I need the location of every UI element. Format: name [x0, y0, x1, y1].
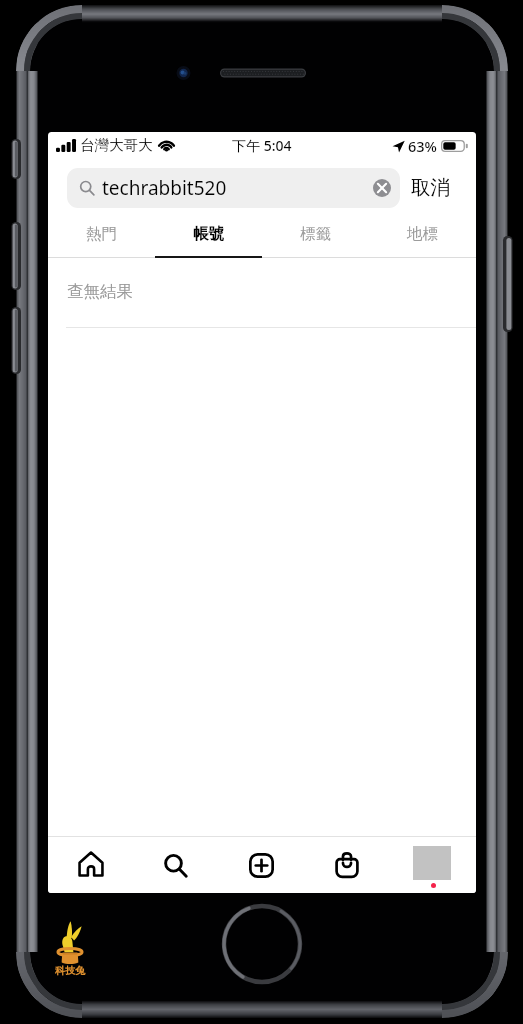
- staticText: 科技兔: [55, 964, 85, 977]
- staticText: techrabbit520: [102, 175, 227, 201]
- button[interactable]: New post: [218, 837, 304, 893]
- button[interactable]: 取消: [400, 162, 461, 213]
- staticText: 標籤: [300, 224, 331, 244]
- button[interactable]: Clear search: [373, 179, 391, 197]
- button[interactable]: 帳號: [155, 213, 262, 258]
- staticText: 下午 5:04: [232, 136, 292, 155]
- staticText: 63%: [408, 136, 437, 156]
- button[interactable]: Shop: [304, 837, 390, 893]
- button[interactable]: techrabbit520: [67, 168, 400, 208]
- button[interactable]: Search: [133, 837, 218, 893]
- button[interactable]: 地標: [369, 213, 476, 258]
- staticText: 地標: [407, 224, 438, 244]
- staticText: 熱門: [86, 224, 117, 244]
- staticText: 取消: [411, 175, 450, 200]
- button[interactable]: Profile: [390, 837, 476, 893]
- button[interactable]: Home: [48, 837, 133, 893]
- staticText: 台灣大哥大: [80, 136, 153, 154]
- staticText: 查無結果: [67, 281, 133, 302]
- staticText: 帳號: [193, 224, 224, 244]
- button[interactable]: 標籤: [262, 213, 369, 258]
- button[interactable]: 熱門: [48, 213, 155, 258]
